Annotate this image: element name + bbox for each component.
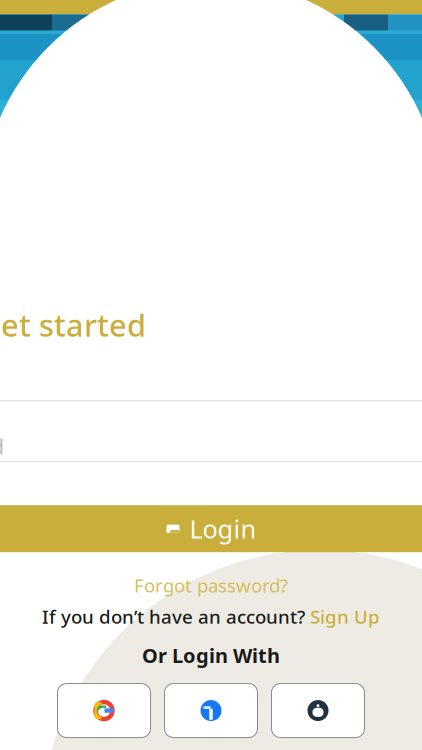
staticText: Password (0, 432, 4, 460)
staticText: Or Login With (142, 642, 280, 669)
button[interactable]: Forgot password? (0, 574, 422, 596)
staticText: Forgot password? (134, 573, 288, 598)
button[interactable]: Login (0, 505, 422, 552)
staticText: If you don’t have an account? (42, 604, 305, 629)
button[interactable]: Sign Up (310, 604, 380, 629)
staticText: Let’s get started (0, 304, 146, 345)
button[interactable]: Sign in with Google (57, 683, 150, 737)
staticText: Login (189, 512, 256, 545)
button[interactable]: Sign in with Facebook (164, 683, 257, 737)
staticText: Sign Up (310, 604, 380, 629)
button[interactable]: Sign in with Apple (271, 683, 364, 737)
